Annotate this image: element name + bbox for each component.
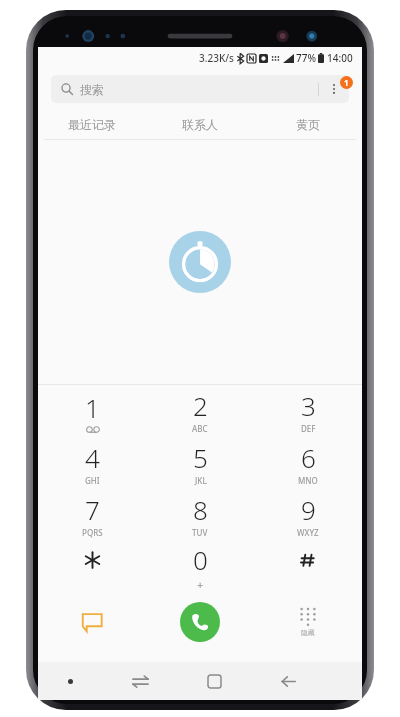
staticText: 隐藏 (301, 628, 315, 637)
button[interactable]: Call (180, 602, 220, 642)
button[interactable]: 1 (38, 385, 146, 437)
button[interactable]: 5 (146, 437, 254, 489)
button[interactable]: 2 (146, 385, 254, 437)
staticText: 77% (296, 51, 316, 65)
button[interactable]: 0 (146, 541, 254, 593)
staticText: ABC (192, 423, 208, 434)
staticText: DEF (301, 423, 316, 434)
button[interactable]: 7 (38, 489, 146, 541)
button[interactable]: Back (251, 662, 325, 700)
staticText: 9 (301, 492, 316, 527)
button[interactable]: 8 (146, 489, 254, 541)
staticText: 6 (301, 440, 316, 475)
staticText: 2 (193, 388, 208, 423)
button[interactable]: 3 (254, 385, 362, 437)
button[interactable]: 最近记录 (38, 109, 146, 139)
staticText: GHI (85, 475, 100, 486)
button[interactable]: More options (319, 75, 349, 103)
staticText: 黄页 (296, 117, 320, 132)
button[interactable] (38, 541, 146, 593)
staticText: 3 (301, 388, 316, 423)
button[interactable]: Switch (103, 662, 177, 700)
staticText: 0 (193, 542, 208, 577)
staticText: 8 (193, 492, 208, 527)
button[interactable]: 6 (254, 437, 362, 489)
button[interactable] (254, 541, 362, 593)
staticText: PQRS (82, 527, 103, 538)
button[interactable]: 搜索 (51, 75, 349, 103)
staticText: TUV (192, 527, 208, 538)
staticText: MNO (298, 475, 318, 486)
button[interactable]: Recents (177, 662, 251, 700)
staticText: 联系人 (182, 117, 218, 132)
button[interactable]: 黄页 (254, 109, 362, 139)
button[interactable]: 9 (254, 489, 362, 541)
staticText: 3.23K/s (199, 51, 234, 65)
staticText: JKL (195, 475, 207, 486)
staticText: 5 (193, 440, 208, 475)
staticText: 搜索 (80, 82, 104, 97)
staticText: 1 (85, 390, 100, 425)
button[interactable]: 联系人 (146, 109, 254, 139)
button[interactable]: Menu dot (38, 662, 103, 700)
staticText: 最近记录 (68, 117, 116, 132)
button[interactable]: Hide keypad (254, 593, 362, 651)
staticText: + (197, 577, 204, 592)
staticText: 7 (85, 492, 100, 527)
button[interactable]: 4 (38, 437, 146, 489)
staticText: 14:00 (327, 51, 353, 65)
button[interactable]: Message (38, 593, 146, 651)
staticText: 4 (85, 440, 100, 475)
button[interactable]: Call timer (169, 231, 231, 293)
staticText: 1 (344, 77, 349, 88)
staticText: WXYZ (297, 527, 319, 538)
